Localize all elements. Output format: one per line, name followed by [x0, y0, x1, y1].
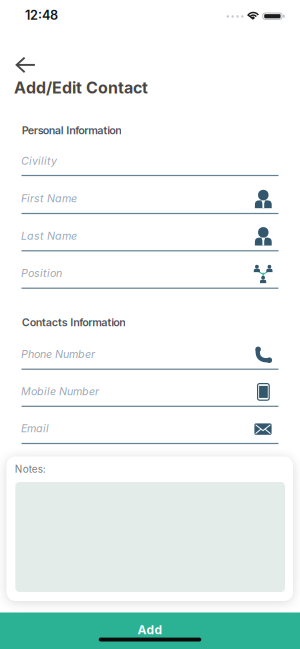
staticText: Notes:: [15, 463, 46, 475]
button[interactable]: Civility: [21, 153, 278, 177]
button[interactable]: Mobile Number: [21, 384, 278, 408]
button[interactable]: Add: [0, 612, 300, 649]
staticText: Add/Edit Contact: [14, 78, 148, 97]
staticText: 12:48: [25, 7, 58, 23]
staticText: Information: [66, 124, 121, 137]
staticText: Information: [70, 316, 125, 329]
button[interactable]: Email: [21, 421, 278, 445]
staticText: First Name: [21, 192, 77, 205]
staticText: Civility: [21, 154, 57, 167]
button[interactable]: Back: [6, 51, 40, 79]
button[interactable]: Phone Number: [21, 347, 278, 371]
staticText: Email: [21, 422, 49, 435]
staticText: Position: [21, 267, 62, 280]
staticText: Phone Number: [21, 348, 95, 361]
staticText: Personal: [22, 124, 63, 137]
button[interactable]: First Name: [21, 191, 278, 215]
button[interactable]: Position: [21, 266, 278, 290]
button[interactable]: Last Name: [21, 229, 278, 253]
staticText: Contacts: [22, 316, 67, 329]
staticText: Add: [137, 623, 162, 637]
staticText: Last Name: [21, 229, 77, 242]
staticText: Mobile Number: [21, 385, 99, 398]
